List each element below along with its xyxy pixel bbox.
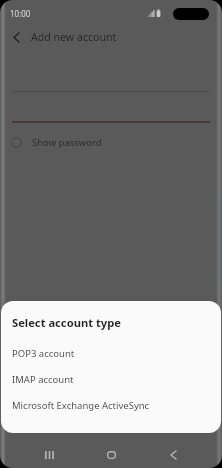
- staticText: Select account type: [12, 315, 121, 330]
- button[interactable]: Microsoft Exchange ActiveSync: [1, 392, 221, 418]
- staticText: Add new account: [31, 30, 117, 44]
- staticText: IMAP account: [12, 373, 74, 386]
- staticText: POP3 account: [12, 347, 75, 360]
- button[interactable]: Recent apps: [34, 439, 65, 468]
- staticText: 10:00: [10, 8, 31, 19]
- staticText: Show password: [32, 136, 102, 149]
- button[interactable]: Back: [158, 439, 189, 468]
- staticText: Microsoft Exchange ActiveSync: [12, 399, 150, 412]
- button[interactable]: Navigate up: [8, 29, 25, 46]
- button[interactable]: Home: [96, 439, 127, 468]
- button[interactable]: IMAP account: [1, 366, 221, 392]
- button[interactable]: Show password: [11, 132, 102, 152]
- button[interactable]: POP3 account: [1, 340, 221, 366]
